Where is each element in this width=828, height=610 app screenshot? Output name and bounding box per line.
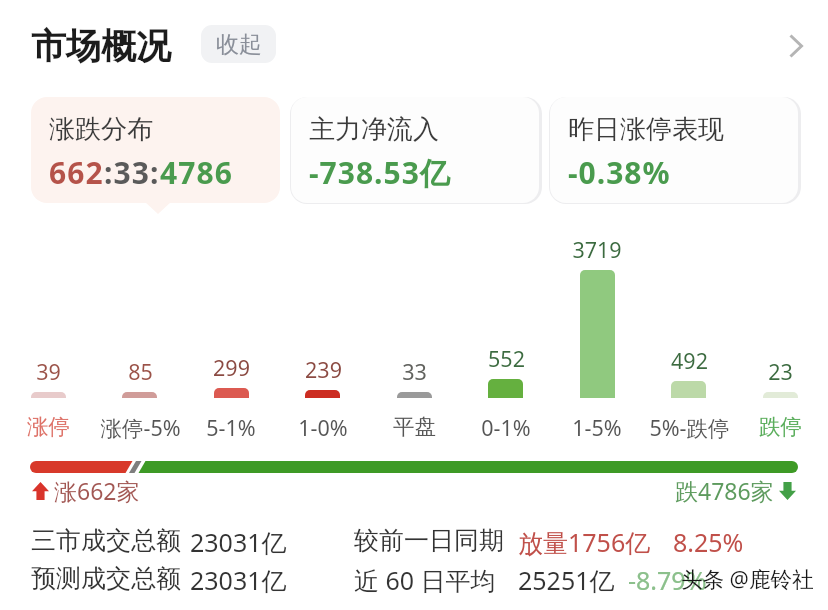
staticText: 23031亿 xyxy=(190,525,287,559)
staticText: 1-0% xyxy=(298,413,348,442)
staticText: 0-1% xyxy=(481,413,531,442)
staticText: 239 xyxy=(305,355,342,384)
staticText: 平盘 xyxy=(393,413,436,440)
staticText: :33: xyxy=(104,152,160,189)
staticText: 5%-跌停 xyxy=(649,413,730,442)
staticText: 23 xyxy=(768,357,793,386)
button[interactable]: Expand xyxy=(764,14,828,78)
staticText: 主力净流入 xyxy=(309,113,439,146)
staticText: 5-1% xyxy=(206,413,256,442)
staticText: 33 xyxy=(402,357,427,386)
staticText: 涨跌分布 xyxy=(49,113,153,146)
staticText: 23031亿 xyxy=(190,563,287,597)
staticText: 市场概况 xyxy=(31,24,171,68)
staticText: 较前一日同期 xyxy=(354,525,504,556)
staticText: 跌停 xyxy=(759,413,802,440)
button[interactable]: 昨日涨停表现 xyxy=(550,97,798,203)
button[interactable]: 收起 xyxy=(201,25,276,63)
staticText: 头条 @鹿铃社 xyxy=(681,564,814,593)
staticText: 25251亿 xyxy=(518,563,615,597)
staticText: 4786 xyxy=(160,152,234,189)
staticText: 昨日涨停表现 xyxy=(568,113,724,146)
staticText: 3719 xyxy=(572,235,622,264)
staticText: -0.38% xyxy=(568,152,671,189)
staticText: 涨662家 xyxy=(54,475,140,506)
button[interactable]: 主力净流入 xyxy=(291,97,539,203)
staticText: 三市成交总额 xyxy=(31,525,181,556)
staticText: 299 xyxy=(213,353,250,382)
staticText: 涨停-5% xyxy=(100,413,181,442)
staticText: -8.79% xyxy=(628,563,707,597)
staticText: 跌4786家 xyxy=(675,475,774,506)
staticText: 收起 xyxy=(216,30,262,59)
staticText: 39 xyxy=(36,357,61,386)
staticText: 预测成交总额 xyxy=(31,563,181,594)
staticText: 492 xyxy=(671,346,708,375)
staticText: 放量1756亿 xyxy=(518,525,651,559)
staticText: 近 60 日平均 xyxy=(354,563,496,597)
staticText: 8.25% xyxy=(673,525,744,559)
staticText: 涨停 xyxy=(27,413,70,440)
staticText: 85 xyxy=(128,357,153,386)
staticText: 662 xyxy=(49,152,104,189)
staticText: 1-5% xyxy=(572,413,622,442)
staticText: -738.53亿 xyxy=(309,152,451,189)
button[interactable]: 涨跌分布 xyxy=(31,97,280,203)
staticText: 552 xyxy=(488,344,525,373)
